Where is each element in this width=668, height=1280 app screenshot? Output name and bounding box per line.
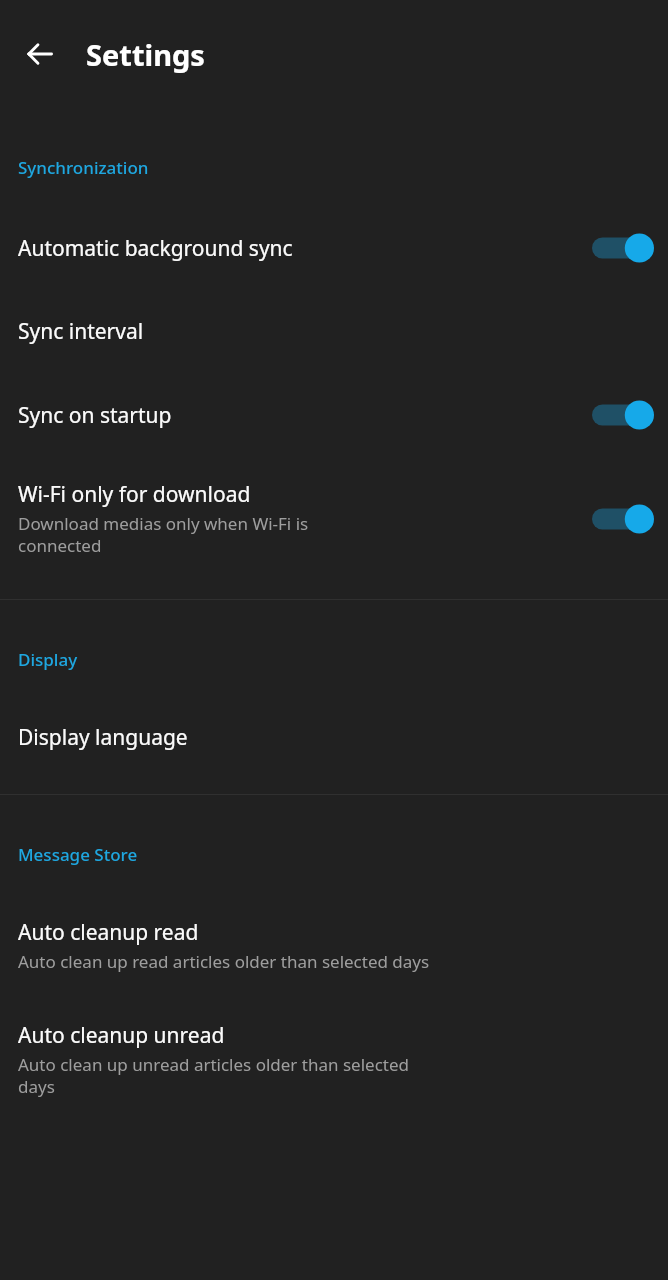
staticText: Sync on startup <box>18 401 172 430</box>
staticText: Synchronization <box>18 156 149 179</box>
button[interactable]: Auto cleanup read <box>0 918 668 973</box>
button[interactable]: Sync interval <box>0 317 668 346</box>
button[interactable]: Toggle setting <box>592 502 654 536</box>
staticText: Automatic background sync <box>18 234 293 263</box>
button[interactable]: Back <box>12 26 68 82</box>
staticText: Auto clean up unread articles older than… <box>18 1053 409 1098</box>
staticText: Auto cleanup unread <box>18 1021 225 1050</box>
staticText: Display language <box>18 723 188 752</box>
staticText: Display <box>18 648 78 671</box>
staticText: Download medias only when Wi-Fi is conne… <box>18 512 309 557</box>
button[interactable]: Display language <box>0 723 668 752</box>
button[interactable]: Sync on startup <box>0 398 668 432</box>
button[interactable]: Automatic background sync <box>0 231 668 265</box>
button[interactable]: Wi-Fi only for download <box>0 480 668 557</box>
button[interactable]: Toggle setting <box>592 398 654 432</box>
button[interactable]: Toggle setting <box>592 231 654 265</box>
staticText: Auto cleanup read <box>18 918 199 947</box>
staticText: Settings <box>86 35 205 74</box>
staticText: Auto clean up read articles older than s… <box>18 950 430 973</box>
staticText: Wi-Fi only for download <box>18 480 251 509</box>
staticText: Message Store <box>18 843 138 866</box>
button[interactable]: Auto cleanup unread <box>0 1021 668 1098</box>
staticText: Sync interval <box>18 317 144 346</box>
